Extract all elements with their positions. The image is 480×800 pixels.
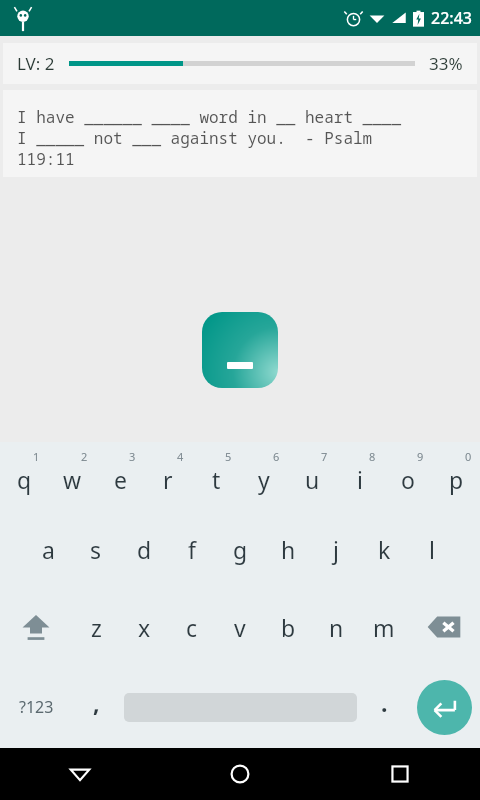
- staticText: r: [163, 464, 173, 495]
- staticText: i: [357, 464, 363, 495]
- button[interactable]: Back: [0, 748, 160, 800]
- button[interactable]: x: [120, 588, 168, 666]
- staticText: m: [373, 612, 395, 643]
- button[interactable]: 8: [336, 442, 384, 510]
- button[interactable]: z: [72, 588, 120, 666]
- staticText: f: [188, 534, 196, 565]
- button[interactable]: Recent apps: [320, 748, 480, 800]
- staticText: c: [186, 612, 198, 643]
- staticText: 5: [225, 449, 232, 464]
- button[interactable]: 4: [144, 442, 192, 510]
- staticText: 8: [369, 449, 376, 464]
- button[interactable]: m: [360, 588, 408, 666]
- staticText: u: [305, 464, 320, 495]
- staticText: t: [212, 464, 221, 495]
- button[interactable]: Space: [120, 666, 360, 748]
- button[interactable]: 6: [240, 442, 288, 510]
- staticText: 33%: [429, 52, 463, 75]
- staticText: 6: [273, 449, 280, 464]
- button[interactable]: b: [264, 588, 312, 666]
- button[interactable]: Blank word: [202, 312, 278, 388]
- button[interactable]: .: [360, 666, 408, 748]
- button[interactable]: k: [360, 510, 408, 588]
- staticText: d: [137, 534, 152, 565]
- staticText: 1: [33, 449, 40, 464]
- button[interactable]: ?123: [0, 666, 72, 748]
- staticText: ?123: [19, 696, 54, 718]
- staticText: 4: [177, 449, 184, 464]
- staticText: o: [401, 464, 415, 495]
- staticText: I have ______ ____ word in __ heart ____…: [17, 106, 402, 170]
- button[interactable]: d: [120, 510, 168, 588]
- button[interactable]: Backspace: [408, 588, 480, 666]
- button[interactable]: 1: [0, 442, 48, 510]
- staticText: p: [449, 464, 464, 495]
- staticText: q: [17, 464, 32, 495]
- staticText: .: [381, 687, 388, 718]
- staticText: g: [233, 534, 248, 565]
- staticText: 0: [465, 449, 472, 464]
- staticText: y: [258, 464, 270, 495]
- button[interactable]: 0: [432, 442, 480, 510]
- button[interactable]: ,: [72, 666, 120, 748]
- staticText: k: [378, 534, 391, 565]
- button[interactable]: h: [264, 510, 312, 588]
- button[interactable]: l: [408, 510, 456, 588]
- staticText: 9: [417, 449, 424, 464]
- button[interactable]: 7: [288, 442, 336, 510]
- staticText: v: [234, 612, 246, 643]
- button[interactable]: n: [312, 588, 360, 666]
- button[interactable]: c: [168, 588, 216, 666]
- staticText: 7: [321, 449, 328, 464]
- staticText: w: [63, 464, 82, 495]
- button[interactable]: 9: [384, 442, 432, 510]
- button[interactable]: j: [312, 510, 360, 588]
- staticText: LV: 2: [17, 52, 55, 75]
- staticText: x: [138, 612, 151, 643]
- button[interactable]: g: [216, 510, 264, 588]
- staticText: a: [42, 534, 55, 565]
- button[interactable]: 2: [48, 442, 96, 510]
- staticText: b: [281, 612, 296, 643]
- staticText: z: [91, 612, 102, 643]
- button[interactable]: 3: [96, 442, 144, 510]
- staticText: j: [333, 534, 339, 565]
- button[interactable]: f: [168, 510, 216, 588]
- staticText: 22:43: [431, 7, 472, 29]
- staticText: h: [281, 534, 296, 565]
- button[interactable]: 5: [192, 442, 240, 510]
- button[interactable]: a: [24, 510, 72, 588]
- staticText: l: [429, 534, 435, 565]
- button[interactable]: Shift: [0, 588, 72, 666]
- staticText: 3: [129, 449, 136, 464]
- button[interactable]: s: [72, 510, 120, 588]
- button[interactable]: Home: [160, 748, 320, 800]
- staticText: n: [329, 612, 344, 643]
- button[interactable]: Enter: [408, 666, 480, 748]
- staticText: ,: [93, 687, 100, 718]
- button[interactable]: v: [216, 588, 264, 666]
- staticText: e: [114, 464, 127, 495]
- staticText: s: [90, 534, 102, 565]
- staticText: 2: [81, 449, 88, 464]
